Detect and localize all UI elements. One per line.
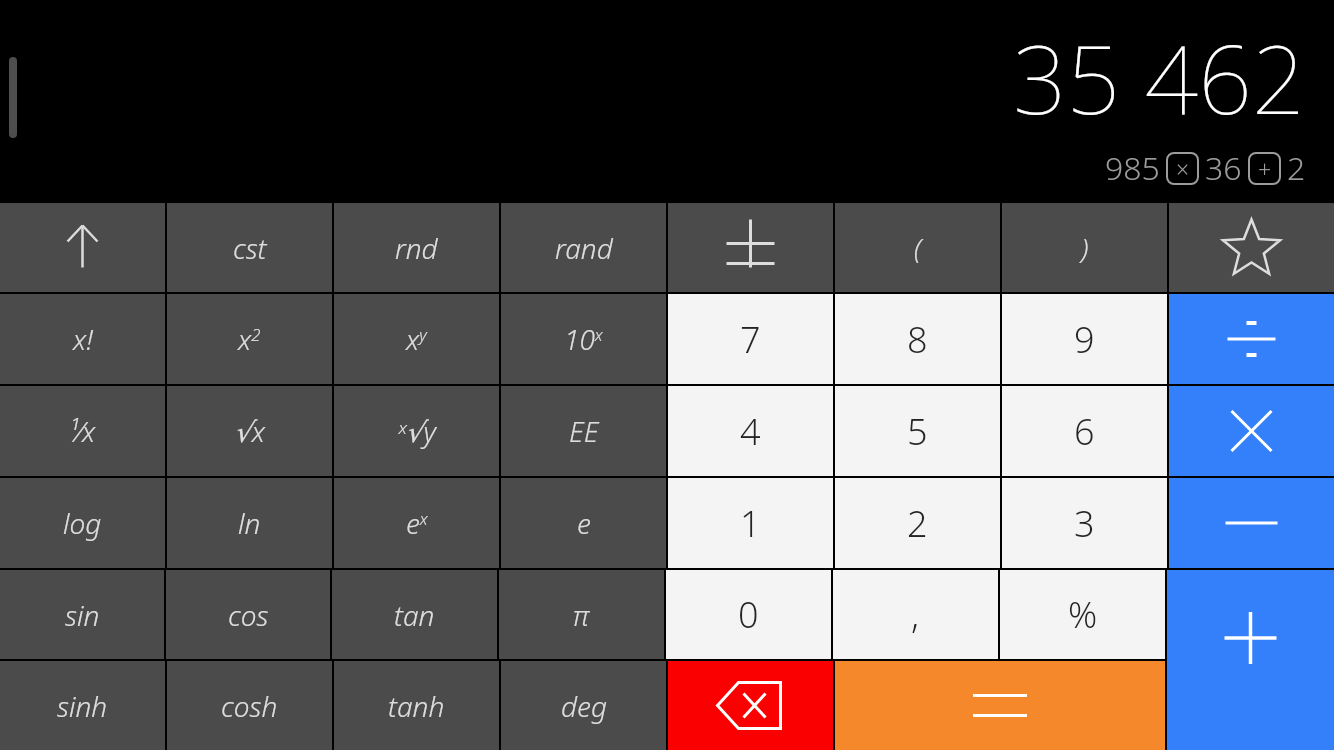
- staticText: 9: [1074, 315, 1095, 364]
- button[interactable]: ln: [167, 478, 332, 568]
- button[interactable]: 6: [1002, 386, 1167, 476]
- button[interactable]: x!: [0, 294, 165, 384]
- button[interactable]: 10x: [501, 294, 666, 384]
- staticText: 7: [740, 315, 761, 364]
- staticText: tanh: [388, 687, 445, 725]
- staticText: x!: [73, 320, 93, 358]
- staticText: deg: [561, 687, 607, 725]
- staticText: 36: [1205, 146, 1242, 190]
- staticText: x2: [238, 320, 261, 358]
- button[interactable]: Backspace: [668, 661, 833, 750]
- staticText: 2: [907, 499, 928, 548]
- staticText: (: [914, 229, 922, 267]
- button[interactable]: ¹⁄x: [0, 386, 165, 476]
- button[interactable]: cosh: [167, 661, 332, 750]
- staticText: π: [573, 596, 590, 634]
- staticText: EE: [569, 412, 599, 450]
- staticText: 10x: [564, 320, 603, 358]
- button[interactable]: %: [1000, 570, 1165, 659]
- staticText: ˣ√y: [397, 412, 436, 450]
- staticText: 3: [1074, 499, 1095, 548]
- button[interactable]: Equals: [835, 661, 1165, 750]
- staticText: 5: [907, 407, 928, 456]
- staticText: ¹⁄x: [69, 412, 96, 450]
- button[interactable]: Minus: [1169, 478, 1334, 568]
- staticText: ex: [406, 504, 428, 542]
- staticText: 35 462: [1013, 14, 1306, 142]
- button[interactable]: log: [0, 478, 165, 568]
- button[interactable]: 3: [1002, 478, 1167, 568]
- button[interactable]: 9: [1002, 294, 1167, 384]
- button[interactable]: Up: [0, 203, 165, 292]
- staticText: 985: [1105, 146, 1160, 190]
- staticText: cos: [228, 596, 269, 634]
- button[interactable]: rand: [501, 203, 666, 292]
- button[interactable]: Plus minus: [668, 203, 833, 292]
- staticText: ×: [1176, 153, 1190, 184]
- button[interactable]: cst: [167, 203, 332, 292]
- button[interactable]: cos: [166, 570, 330, 659]
- staticText: 0: [738, 590, 759, 639]
- button[interactable]: (: [835, 203, 1000, 292]
- staticText: 2: [1287, 146, 1306, 190]
- button[interactable]: 1: [668, 478, 833, 568]
- button[interactable]: x2: [167, 294, 332, 384]
- staticText: 4: [740, 407, 761, 456]
- staticText: ,: [911, 590, 920, 639]
- button[interactable]: √x: [167, 386, 332, 476]
- button[interactable]: EE: [501, 386, 666, 476]
- button[interactable]: tanh: [334, 661, 499, 750]
- staticText: ): [1081, 229, 1089, 267]
- button[interactable]: Multiply: [1169, 386, 1334, 476]
- staticText: e: [577, 504, 591, 542]
- staticText: sin: [65, 596, 100, 634]
- button[interactable]: 0: [666, 570, 831, 659]
- staticText: 1: [740, 499, 761, 548]
- staticText: log: [63, 504, 102, 542]
- button[interactable]: ,: [833, 570, 998, 659]
- button[interactable]: tan: [332, 570, 497, 659]
- staticText: 8: [907, 315, 928, 364]
- button[interactable]: 4: [668, 386, 833, 476]
- button[interactable]: rnd: [334, 203, 499, 292]
- button[interactable]: deg: [501, 661, 666, 750]
- button[interactable]: π: [499, 570, 664, 659]
- button[interactable]: ): [1002, 203, 1167, 292]
- staticText: +: [1258, 153, 1272, 184]
- button[interactable]: 5: [835, 386, 1000, 476]
- staticText: 6: [1074, 407, 1095, 456]
- staticText: √x: [234, 412, 265, 450]
- button[interactable]: sin: [0, 570, 164, 659]
- staticText: ln: [238, 504, 261, 542]
- button[interactable]: ex: [334, 478, 499, 568]
- staticText: rand: [555, 229, 613, 267]
- button[interactable]: 8: [835, 294, 1000, 384]
- staticText: rnd: [395, 229, 438, 267]
- staticText: cst: [233, 229, 267, 267]
- staticText: tan: [394, 596, 435, 634]
- staticText: cosh: [221, 687, 278, 725]
- button[interactable]: Divide: [1169, 294, 1334, 384]
- button[interactable]: e: [501, 478, 666, 568]
- button[interactable]: Plus: [1167, 570, 1334, 750]
- button[interactable]: sinh: [0, 661, 165, 750]
- button[interactable]: 2: [835, 478, 1000, 568]
- button[interactable]: 7: [668, 294, 833, 384]
- button[interactable]: ˣ√y: [334, 386, 499, 476]
- staticText: xy: [406, 320, 427, 358]
- staticText: %: [1068, 590, 1098, 639]
- button[interactable]: xy: [334, 294, 499, 384]
- button[interactable]: Favorite: [1169, 203, 1334, 292]
- staticText: sinh: [57, 687, 108, 725]
